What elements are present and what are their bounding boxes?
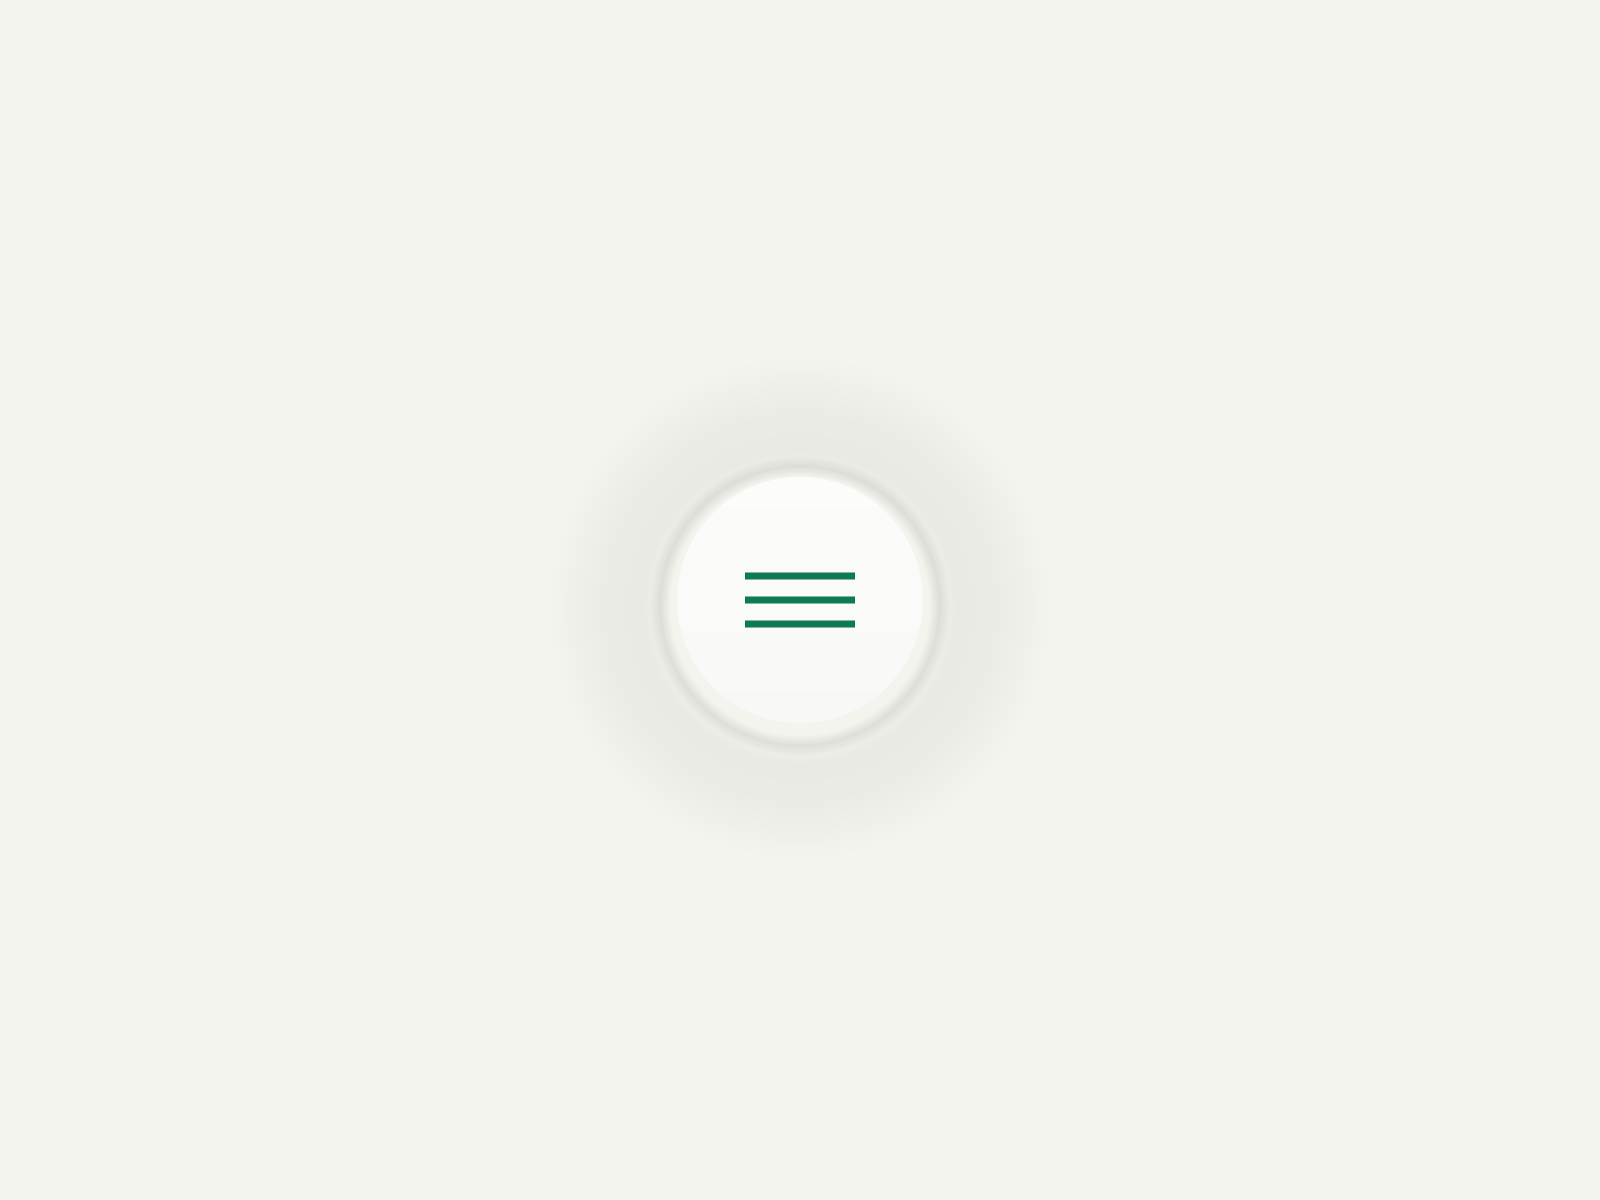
button[interactable]: Open menu [677, 477, 923, 723]
